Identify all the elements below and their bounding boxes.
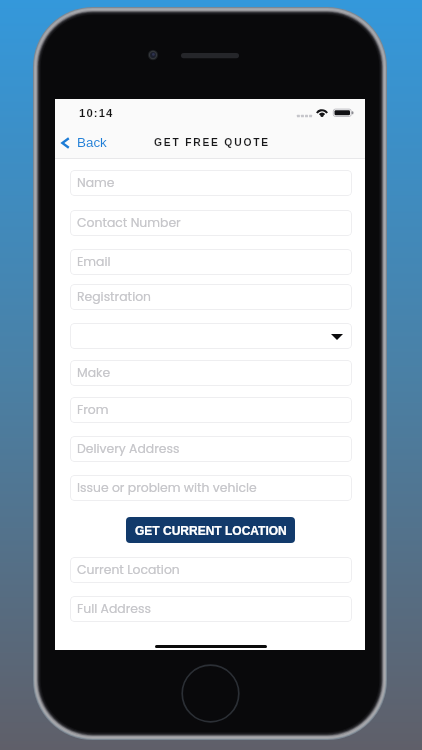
staticText: From — [77, 401, 109, 418]
staticText: 10:14 — [79, 107, 114, 120]
staticText: GET FREE QUOTE — [154, 137, 270, 149]
button[interactable]: Registration — [70, 284, 352, 310]
button[interactable]: Email — [70, 249, 352, 275]
button[interactable]: Issue or problem with vehicle — [70, 475, 352, 501]
button[interactable]: Name — [70, 170, 352, 196]
staticText: Name — [77, 174, 115, 191]
button[interactable]: Make — [70, 360, 352, 386]
button[interactable]: Full Address — [70, 596, 352, 622]
button[interactable]: Current Location — [70, 557, 352, 583]
staticText: Delivery Address — [77, 440, 180, 457]
staticText: Email — [77, 253, 111, 270]
staticText: Contact Number — [77, 214, 181, 231]
staticText: Back — [77, 135, 107, 150]
button[interactable]: Back — [55, 133, 115, 156]
staticText: Registration — [77, 288, 152, 305]
staticText: Current Location — [77, 561, 180, 578]
staticText: Make — [77, 364, 111, 381]
button[interactable]: From — [70, 397, 352, 423]
staticText: Issue or problem with vehicle — [77, 479, 257, 496]
staticText: Full Address — [77, 600, 151, 617]
button[interactable]: Contact Number — [70, 210, 352, 236]
staticText: GET CURRENT LOCATION — [135, 524, 287, 537]
button[interactable]: Select vehicle type — [70, 323, 352, 349]
button[interactable]: GET CURRENT LOCATION — [126, 517, 295, 543]
button[interactable]: Delivery Address — [70, 436, 352, 462]
